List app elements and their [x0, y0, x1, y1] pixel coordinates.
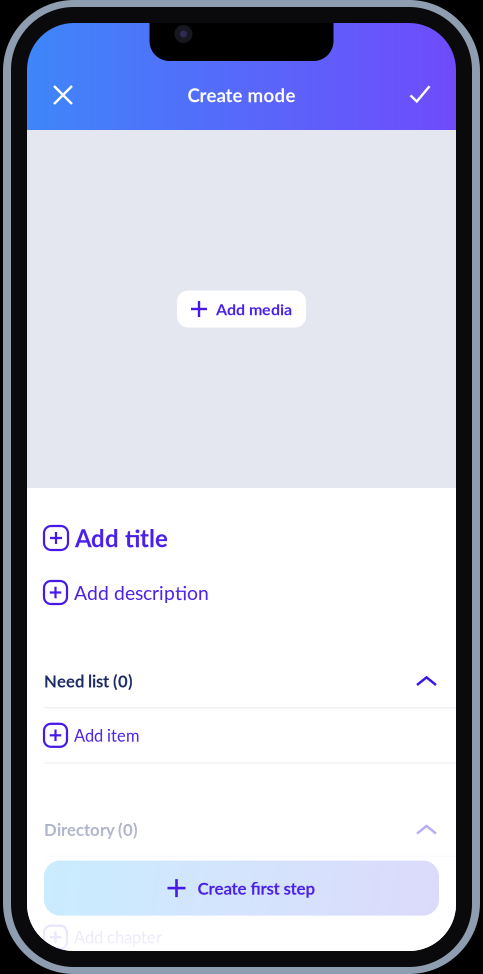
button[interactable]: Close [35, 73, 91, 117]
staticText: Add media [216, 299, 292, 319]
button[interactable]: Add title [27, 525, 456, 551]
button[interactable]: Confirm [392, 73, 448, 117]
staticText: Need list (0) [44, 671, 133, 691]
button[interactable]: Add item [27, 708, 456, 762]
staticText: Create first step [197, 878, 315, 898]
button[interactable]: Add description [27, 579, 456, 606]
button[interactable]: Add chapter [27, 910, 456, 964]
button[interactable]: Need list (0) [27, 668, 456, 694]
button[interactable]: Add media [177, 290, 306, 327]
staticText: Create mode [187, 84, 295, 106]
staticText: Add title [75, 524, 168, 552]
staticText: Directory (0) [44, 820, 138, 840]
button[interactable]: Create first step [27, 861, 456, 916]
staticText: Add item [74, 725, 139, 745]
button[interactable]: Directory (0) [27, 817, 456, 843]
staticText: Add chapter [74, 927, 162, 947]
staticText: Add description [74, 581, 209, 604]
